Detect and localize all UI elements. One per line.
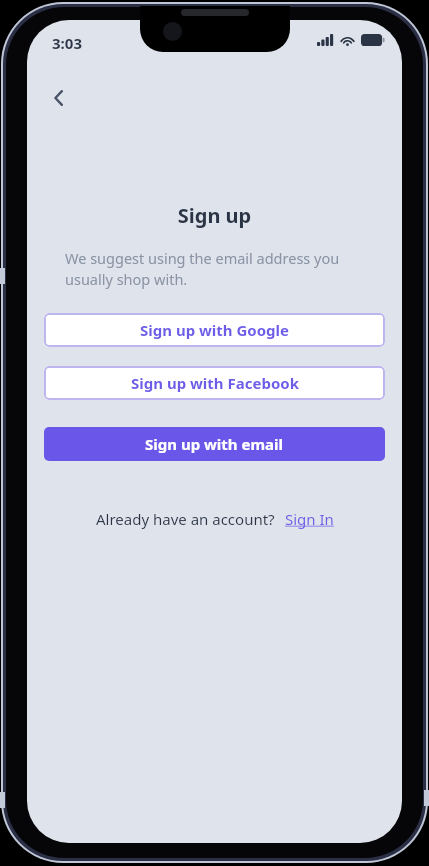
staticText: Sign up with Google (140, 320, 290, 340)
staticText: Already have an account? (96, 509, 275, 529)
button[interactable]: Sign up with Google (44, 313, 385, 347)
staticText: 3:03 (52, 33, 82, 53)
staticText: Sign up with email (145, 434, 284, 454)
staticText: Sign up with Facebook (131, 373, 299, 393)
button[interactable]: Sign up with email (44, 427, 385, 461)
staticText: We suggest using the email address you u… (65, 248, 347, 290)
button[interactable]: Sign In (285, 509, 334, 529)
staticText: Sign In (285, 509, 334, 529)
button[interactable]: Back (35, 74, 83, 122)
staticText: Sign up (27, 202, 402, 229)
button[interactable]: Sign up with Facebook (44, 366, 385, 400)
